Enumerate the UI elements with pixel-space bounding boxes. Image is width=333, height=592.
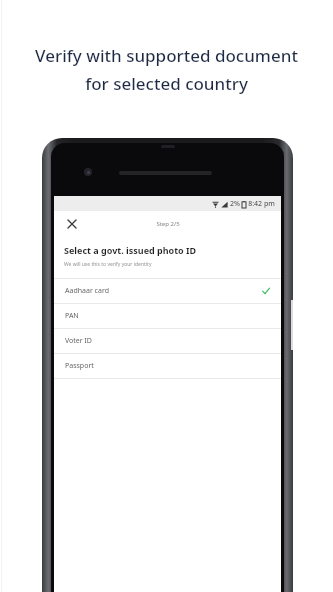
staticText: for selected country (85, 72, 248, 95)
staticText: Select a govt. issued photo ID (64, 244, 271, 256)
button[interactable]: Passport (54, 354, 281, 378)
button[interactable]: Aadhaar card (54, 279, 281, 303)
staticText: Step 2/5 (156, 220, 180, 228)
staticText: Aadhaar card (65, 286, 109, 296)
button[interactable]: PAN (54, 304, 281, 328)
staticText: Verify with supported document (35, 44, 298, 67)
staticText: 2% (230, 199, 240, 209)
staticText: We will use this to verify your identity (64, 261, 271, 268)
staticText: 8:42 pm (248, 199, 275, 209)
button[interactable]: Close (63, 215, 81, 233)
staticText: PAN (65, 311, 79, 321)
button[interactable]: Voter ID (54, 329, 281, 353)
staticText: Voter ID (65, 336, 92, 346)
staticText: Passport (65, 361, 94, 371)
